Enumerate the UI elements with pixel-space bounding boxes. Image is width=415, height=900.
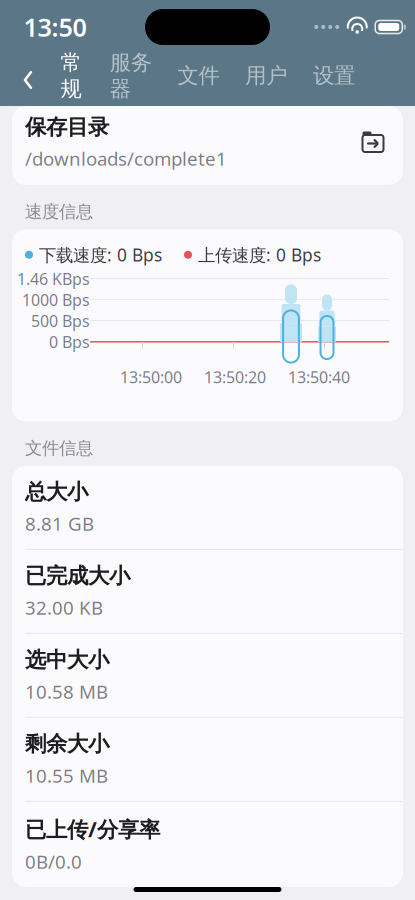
staticText: 用户 xyxy=(245,63,287,89)
staticText: 13:50 xyxy=(23,10,86,44)
staticText: 保存目录 xyxy=(25,114,109,140)
button[interactable]: 常规 xyxy=(50,49,92,110)
button[interactable]: 文件 xyxy=(169,63,227,97)
staticText: 速度信息 xyxy=(25,201,93,222)
staticText: 下载速度: 0 Bps xyxy=(39,243,162,266)
staticText: 文件信息 xyxy=(25,437,93,459)
staticText: 13:50:00 xyxy=(120,366,182,387)
staticText: 设置 xyxy=(313,63,355,89)
staticText: 上传速度: 0 Bps xyxy=(198,243,321,266)
staticText: 0 Bps xyxy=(49,331,90,352)
staticText: 13:50:40 xyxy=(288,366,350,387)
staticText: 总大小 xyxy=(25,479,88,505)
staticText: 选中大小 xyxy=(25,647,109,673)
staticText: 32.00 KB xyxy=(25,595,103,620)
staticText: 1.46 KBps xyxy=(17,268,90,289)
staticText: 0B/0.0 xyxy=(25,849,82,874)
staticText: 常规 xyxy=(60,49,81,102)
staticText: 文件 xyxy=(177,63,219,89)
staticText: 13:50:20 xyxy=(204,366,266,387)
button[interactable]: 设置 xyxy=(305,63,363,97)
button[interactable]: 用户 xyxy=(237,63,295,97)
staticText: 已上传/分享率 xyxy=(25,815,160,843)
button[interactable]: 返回 xyxy=(6,60,50,100)
staticText: 8.81 GB xyxy=(25,511,94,536)
staticText: /downloads/complete1 xyxy=(25,146,227,171)
staticText: 1000 Bps xyxy=(22,289,90,310)
staticText: 剩余大小 xyxy=(25,731,109,757)
staticText: 10.55 MB xyxy=(25,763,108,788)
button[interactable]: 服务器 xyxy=(102,49,160,110)
staticText: 10.58 MB xyxy=(25,679,108,704)
button[interactable]: 更改保存目录 xyxy=(356,125,390,159)
staticText: 500 Bps xyxy=(31,310,90,331)
staticText: 已完成大小 xyxy=(25,563,130,589)
staticText: 服务器 xyxy=(110,49,152,102)
